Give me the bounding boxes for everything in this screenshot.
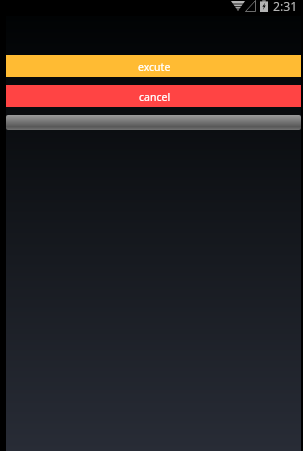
button[interactable]: Progress (6, 115, 301, 130)
staticText: cancel (139, 90, 171, 104)
button[interactable]: excute (6, 55, 301, 77)
staticText: 2:31 (273, 0, 298, 14)
button[interactable]: cancel (6, 85, 301, 107)
staticText: excute (138, 60, 171, 74)
